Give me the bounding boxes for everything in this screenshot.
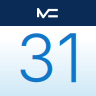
staticText: 31 — [16, 18, 82, 96]
